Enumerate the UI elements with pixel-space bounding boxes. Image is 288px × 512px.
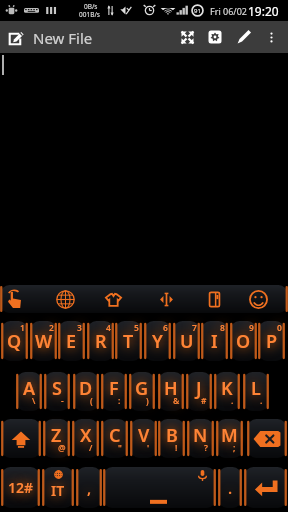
staticText: W — [35, 329, 53, 354]
staticText: F — [109, 376, 119, 401]
staticText: 1 — [20, 322, 25, 334]
staticText: O — [236, 329, 251, 354]
button[interactable]: Shift — [1, 419, 41, 458]
button[interactable]: K — [214, 372, 240, 411]
staticText: 19:20 — [248, 3, 279, 19]
staticText: @ — [58, 442, 66, 454]
staticText: . — [260, 395, 263, 407]
staticText: V — [138, 423, 150, 448]
button[interactable]: L — [243, 372, 269, 411]
staticText: " — [118, 442, 122, 454]
staticText: L — [251, 376, 261, 401]
button[interactable]: Language — [48, 285, 82, 313]
staticText: I — [211, 329, 218, 354]
staticText: / — [89, 442, 93, 454]
staticText: R — [95, 329, 107, 354]
staticText: 5 — [134, 322, 139, 334]
staticText: New File — [33, 28, 93, 48]
staticText: K — [221, 376, 233, 401]
staticText: S — [52, 376, 62, 401]
staticText: 0B/s — [84, 2, 98, 11]
button[interactable]: T — [115, 321, 142, 361]
button[interactable]: Enter — [244, 467, 287, 508]
button[interactable]: Backspace — [247, 419, 287, 458]
button[interactable]: C — [101, 419, 128, 458]
button[interactable]: Clipboard — [197, 285, 231, 313]
staticText: X — [80, 423, 92, 448]
button[interactable]: . — [218, 467, 242, 508]
button[interactable]: J — [186, 372, 212, 411]
button[interactable]: Language — [42, 467, 74, 508]
button[interactable]: Fullscreen — [174, 21, 200, 53]
button[interactable]: O — [230, 321, 257, 361]
staticText: 6 — [163, 322, 168, 334]
button[interactable]: H — [158, 372, 184, 411]
button[interactable]: P — [258, 321, 285, 361]
staticText: 91 — [194, 7, 201, 15]
staticText: 8 — [220, 322, 225, 334]
button[interactable]: U — [173, 321, 200, 361]
staticText: ( — [90, 395, 93, 407]
staticText: 9 — [249, 322, 254, 334]
button[interactable]: B — [158, 419, 185, 458]
staticText: , — [87, 478, 92, 498]
button[interactable]: Keyboard modes — [0, 285, 31, 313]
button[interactable]: W — [30, 321, 57, 361]
staticText: . — [231, 395, 234, 407]
staticText: 4 — [106, 322, 111, 334]
button[interactable]: D — [73, 372, 99, 411]
button[interactable]: Space — [103, 467, 216, 508]
button[interactable]: Cursor control — [149, 285, 183, 313]
staticText: 3 — [77, 322, 82, 334]
staticText: IT — [51, 481, 65, 500]
staticText: 2 — [49, 322, 54, 334]
staticText: D — [79, 376, 93, 401]
button[interactable]: S — [44, 372, 70, 411]
staticText: Fri 06/02 — [210, 5, 247, 17]
staticText: N — [193, 423, 208, 448]
button[interactable]: Settings — [202, 21, 228, 53]
button[interactable]: Rename file — [4, 21, 28, 53]
staticText: U — [180, 329, 194, 354]
staticText: \ — [32, 395, 36, 407]
staticText: J — [196, 376, 202, 401]
staticText: . — [228, 478, 233, 498]
staticText: : — [118, 395, 121, 407]
button[interactable]: G — [129, 372, 155, 411]
staticText: ' — [147, 442, 150, 454]
staticText: 0 — [277, 322, 282, 334]
staticText: H — [164, 376, 178, 401]
staticText: G — [135, 376, 149, 401]
staticText: 12# — [8, 478, 34, 497]
staticText: Y — [152, 329, 163, 354]
button[interactable]: Emoji — [241, 285, 275, 313]
staticText: P — [266, 329, 278, 354]
staticText: A — [23, 376, 36, 401]
staticText: C — [109, 423, 121, 448]
staticText: & — [173, 395, 180, 407]
button[interactable]: , — [76, 467, 102, 508]
button[interactable]: Theme — [96, 285, 130, 313]
button[interactable]: M — [216, 419, 243, 458]
button[interactable]: E — [58, 321, 85, 361]
button[interactable]: More options — [260, 21, 282, 53]
button[interactable]: Edit — [231, 21, 257, 53]
button[interactable]: F — [101, 372, 127, 411]
staticText: 001B/s — [79, 10, 100, 19]
button[interactable]: N — [187, 419, 214, 458]
button[interactable]: A — [16, 372, 42, 411]
button[interactable]: R — [87, 321, 114, 361]
staticText: M — [221, 423, 238, 448]
button[interactable]: V — [130, 419, 157, 458]
staticText: ) — [146, 395, 149, 407]
button[interactable]: Z — [43, 419, 70, 458]
staticText: # — [201, 395, 207, 407]
staticText: E — [66, 329, 77, 354]
button[interactable]: I — [201, 321, 228, 361]
button[interactable]: Q — [1, 321, 28, 361]
button[interactable]: Symbols — [1, 467, 40, 508]
button[interactable]: Y — [144, 321, 171, 361]
staticText: ; — [233, 442, 236, 454]
staticText: ! — [175, 442, 178, 454]
button[interactable]: X — [72, 419, 99, 458]
